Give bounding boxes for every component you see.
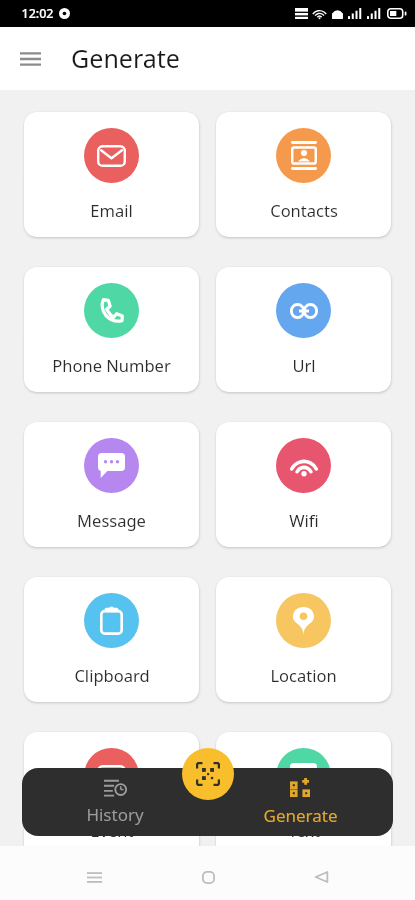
staticText: Location <box>270 664 337 686</box>
button[interactable]: Text <box>216 732 391 857</box>
button[interactable]: Event <box>24 732 199 857</box>
button[interactable]: Wifi <box>216 422 391 547</box>
button[interactable]: Back <box>302 858 340 896</box>
staticText: Generate <box>71 41 180 75</box>
staticText: Contacts <box>270 199 338 221</box>
button[interactable]: Message <box>24 422 199 547</box>
staticText: History <box>86 803 144 826</box>
button[interactable]: Url <box>216 267 391 392</box>
staticText: Wifi <box>289 509 319 531</box>
staticText: Clipboard <box>74 664 150 686</box>
staticText: Text <box>288 819 320 841</box>
staticText: 12:02 <box>21 5 54 22</box>
button[interactable]: Contacts <box>216 112 391 237</box>
button[interactable]: History <box>22 768 207 836</box>
button[interactable]: Clipboard <box>24 577 199 702</box>
button[interactable]: Home <box>189 858 227 896</box>
button[interactable]: Phone Number <box>24 267 199 392</box>
staticText: Url <box>292 354 316 376</box>
button[interactable]: Open navigation menu <box>10 39 50 79</box>
button[interactable]: Scan QR code <box>182 748 234 800</box>
button[interactable]: Generate <box>207 768 393 836</box>
staticText: Event <box>90 819 134 841</box>
staticText: Message <box>77 509 146 531</box>
staticText: Generate <box>263 804 338 827</box>
staticText: Email <box>90 199 133 221</box>
button[interactable]: Recent apps <box>75 858 113 896</box>
staticText: Phone Number <box>52 354 171 376</box>
button[interactable]: Email <box>24 112 199 237</box>
button[interactable]: Location <box>216 577 391 702</box>
